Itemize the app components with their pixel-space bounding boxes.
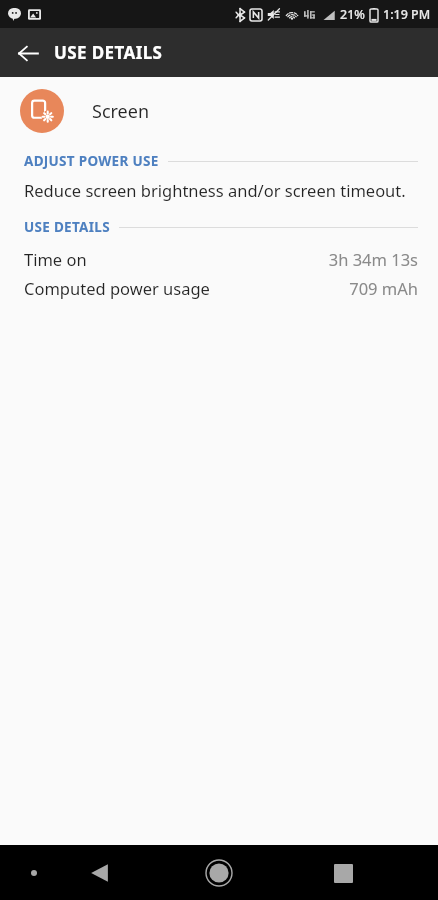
button[interactable]: Screen [0, 77, 438, 145]
button[interactable]: Menu [16, 855, 52, 891]
staticText: 3h 34m 13s [328, 248, 418, 270]
button[interactable]: Back [6, 31, 50, 75]
button[interactable]: Back [76, 850, 122, 896]
button[interactable]: Computed power usage [0, 277, 438, 299]
staticText: USE DETAILS [54, 41, 163, 64]
staticText: 21% [340, 6, 365, 23]
button[interactable]: Recent apps [320, 850, 366, 896]
staticText: Computed power usage [24, 277, 210, 299]
staticText: 1:19 PM [383, 6, 431, 23]
staticText: Time on [24, 248, 87, 270]
staticText: USE DETAILS [24, 218, 110, 236]
staticText: Screen [92, 99, 150, 124]
staticText: Reduce screen brightness and/or screen t… [24, 179, 406, 201]
button[interactable]: Time on [0, 248, 438, 270]
button[interactable]: Home [195, 849, 243, 897]
staticText: 709 mAh [349, 277, 418, 299]
staticText: ADJUST POWER USE [24, 152, 159, 170]
